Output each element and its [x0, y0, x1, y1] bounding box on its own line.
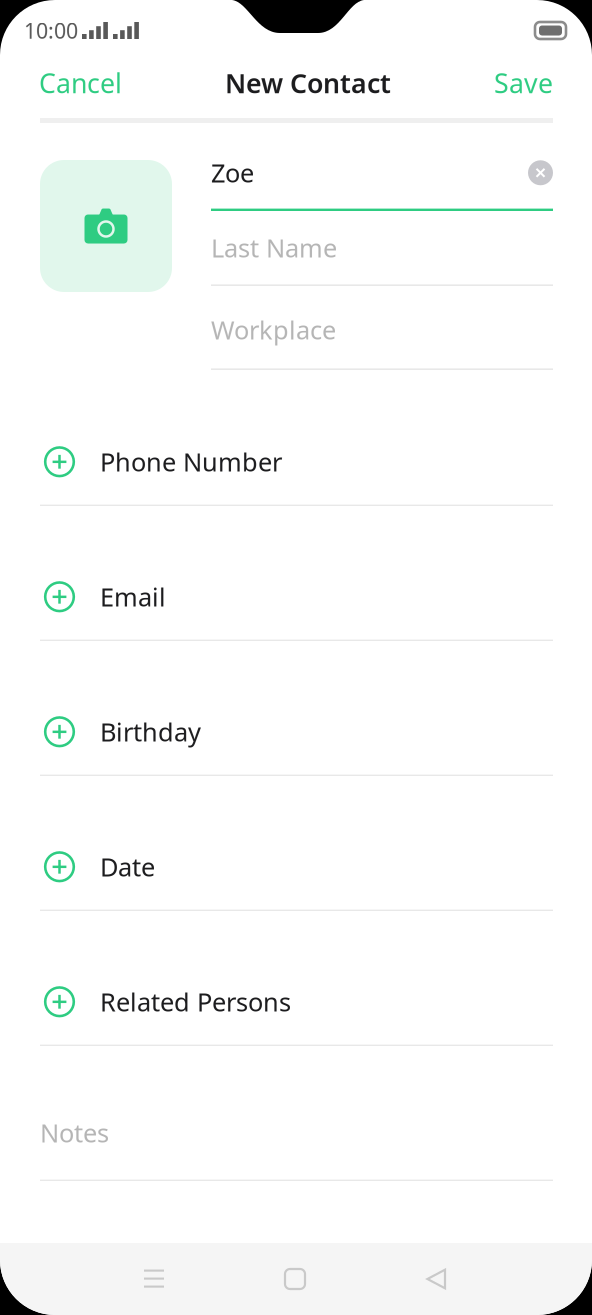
button[interactable]: Notes [0, 1046, 592, 1181]
staticText: Notes [40, 1116, 109, 1150]
button[interactable]: Home [267, 1251, 323, 1307]
staticText: Cancel [39, 65, 122, 101]
button[interactable]: Date [0, 776, 592, 911]
staticText: Phone Number [100, 445, 282, 479]
staticText: New Contact [225, 65, 391, 101]
button[interactable]: Cancel [39, 65, 122, 101]
staticText: Last Name [211, 231, 337, 264]
button[interactable]: Related Persons [0, 911, 592, 1046]
button[interactable]: Back [408, 1250, 464, 1307]
staticText: Save [494, 65, 553, 101]
button[interactable]: Clear text [528, 160, 553, 185]
button[interactable]: Save [494, 65, 553, 101]
staticText: Birthday [100, 715, 201, 749]
staticText: Date [100, 850, 155, 884]
staticText: Email [100, 580, 166, 614]
button[interactable]: Add photo [40, 160, 172, 292]
staticText: Workplace [211, 313, 336, 346]
button[interactable]: Recent apps [126, 1251, 182, 1306]
button[interactable]: Email [0, 506, 592, 641]
staticText: 10:00 [24, 16, 78, 45]
staticText: Zoe [211, 156, 254, 190]
button[interactable]: Birthday [0, 641, 592, 776]
staticText: Related Persons [100, 985, 291, 1019]
button[interactable]: Phone Number [0, 371, 592, 506]
